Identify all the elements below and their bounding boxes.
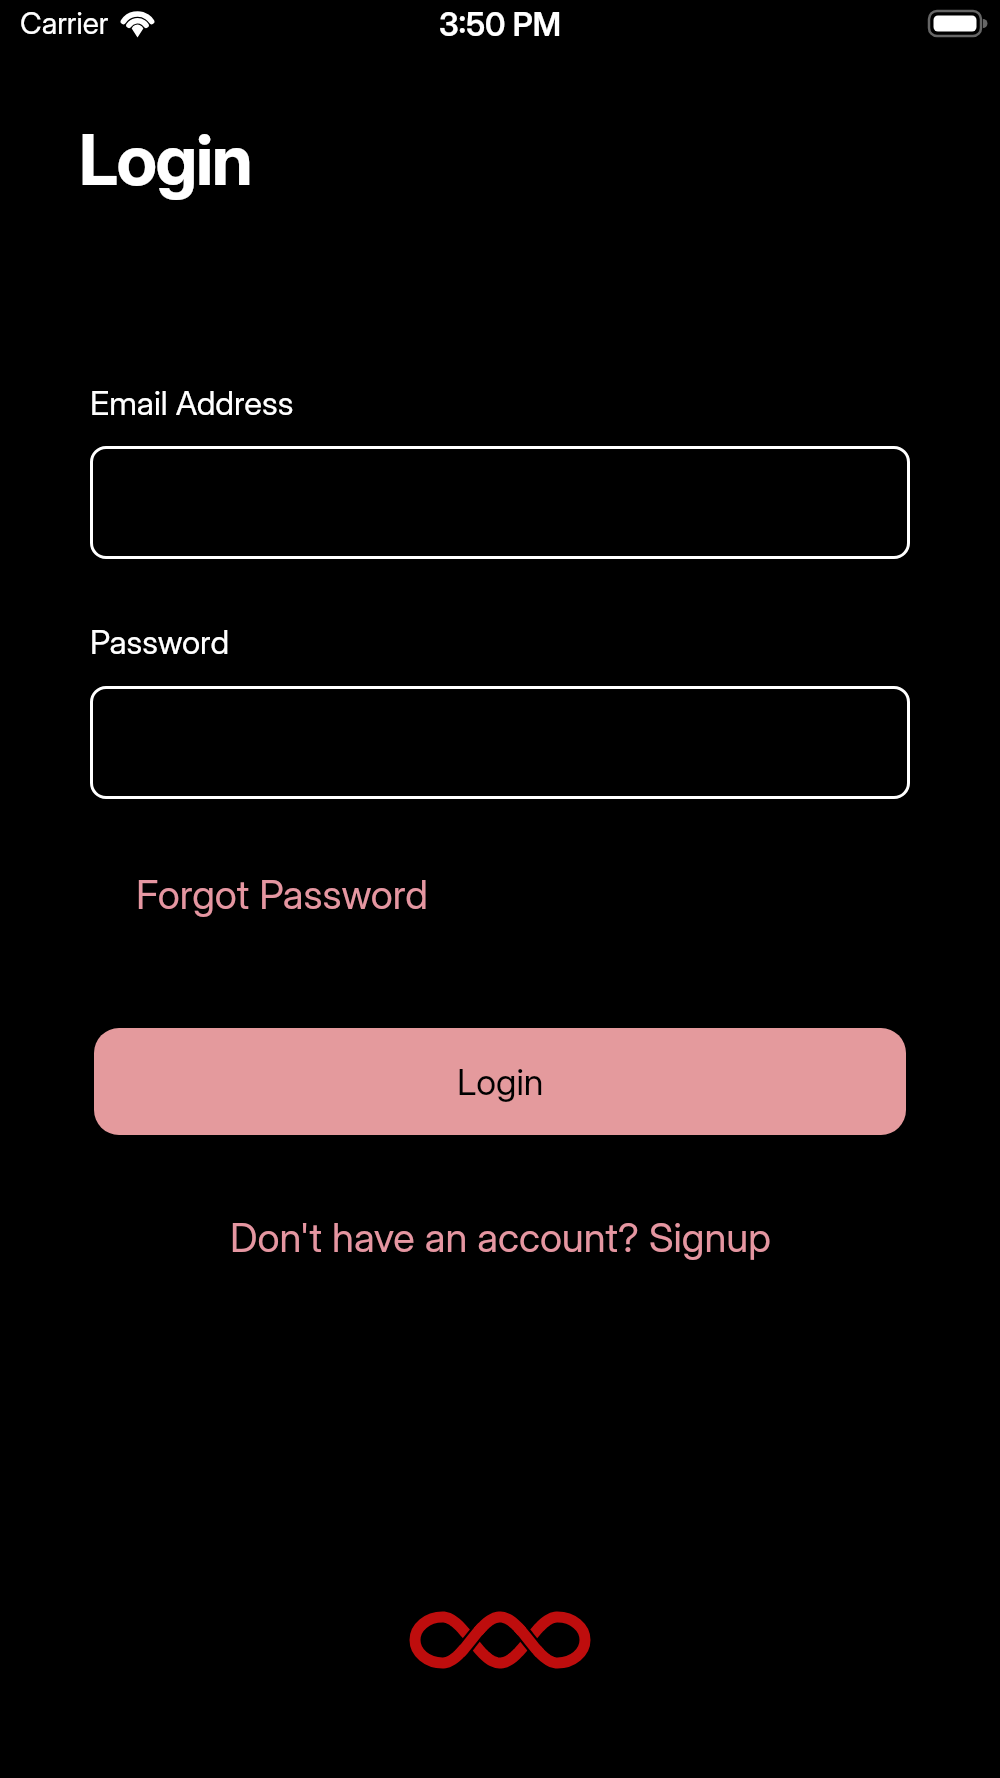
staticText: Email Address: [90, 383, 294, 423]
button[interactable]: Login: [94, 1028, 906, 1135]
staticText: Login: [457, 1060, 544, 1104]
button[interactable]: [90, 686, 910, 799]
button[interactable]: Don't have an account? Signup: [230, 1213, 771, 1261]
staticText: Login: [79, 117, 252, 202]
staticText: Password: [90, 622, 230, 662]
button[interactable]: Forgot Password: [136, 870, 428, 918]
staticText: Forgot Password: [136, 870, 428, 918]
staticText: Carrier: [20, 5, 109, 41]
staticText: 3:50 PM: [439, 5, 561, 44]
staticText: Don't have an account? Signup: [230, 1213, 771, 1261]
button[interactable]: [90, 446, 910, 559]
